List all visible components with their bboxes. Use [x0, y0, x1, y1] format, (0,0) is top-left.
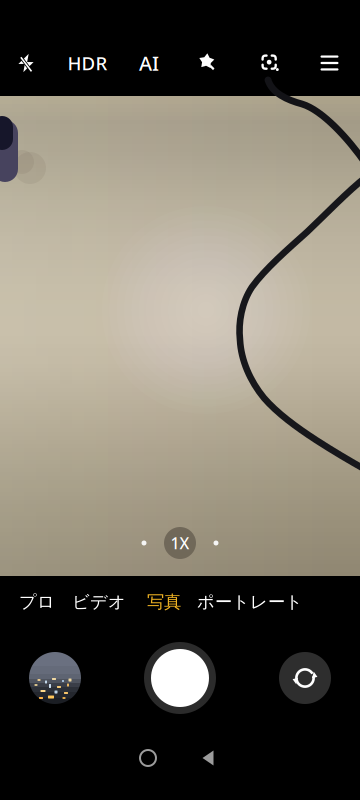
button[interactable]: Home [118, 736, 178, 780]
button[interactable]: AI [123, 39, 175, 87]
button[interactable]: プロ [10, 583, 64, 621]
button[interactable]: Flash off [0, 39, 52, 87]
button[interactable]: Gallery [22, 645, 88, 711]
button[interactable]: More settings [299, 39, 360, 87]
button[interactable]: 写真 [134, 583, 194, 621]
staticText: AI [139, 50, 159, 76]
button[interactable]: Telephoto [196, 526, 236, 560]
staticText: ポートレート [197, 591, 303, 613]
button[interactable]: HDR [52, 39, 123, 87]
staticText: ビデオ [72, 591, 126, 613]
button[interactable]: Beautify [175, 39, 241, 87]
button[interactable]: Back [178, 736, 238, 780]
staticText: プロ [19, 591, 55, 613]
button[interactable]: Scan [241, 39, 299, 87]
staticText: 1X [170, 532, 189, 554]
button[interactable]: Take photo [141, 639, 219, 717]
button[interactable]: 1X [164, 527, 196, 559]
staticText: 写真 [147, 591, 181, 613]
staticText: HDR [67, 51, 107, 75]
button[interactable]: Switch camera [272, 645, 338, 711]
button[interactable]: ポートレート [194, 583, 306, 621]
button[interactable]: ビデオ [64, 583, 134, 621]
button[interactable]: Ultra wide [124, 526, 164, 560]
